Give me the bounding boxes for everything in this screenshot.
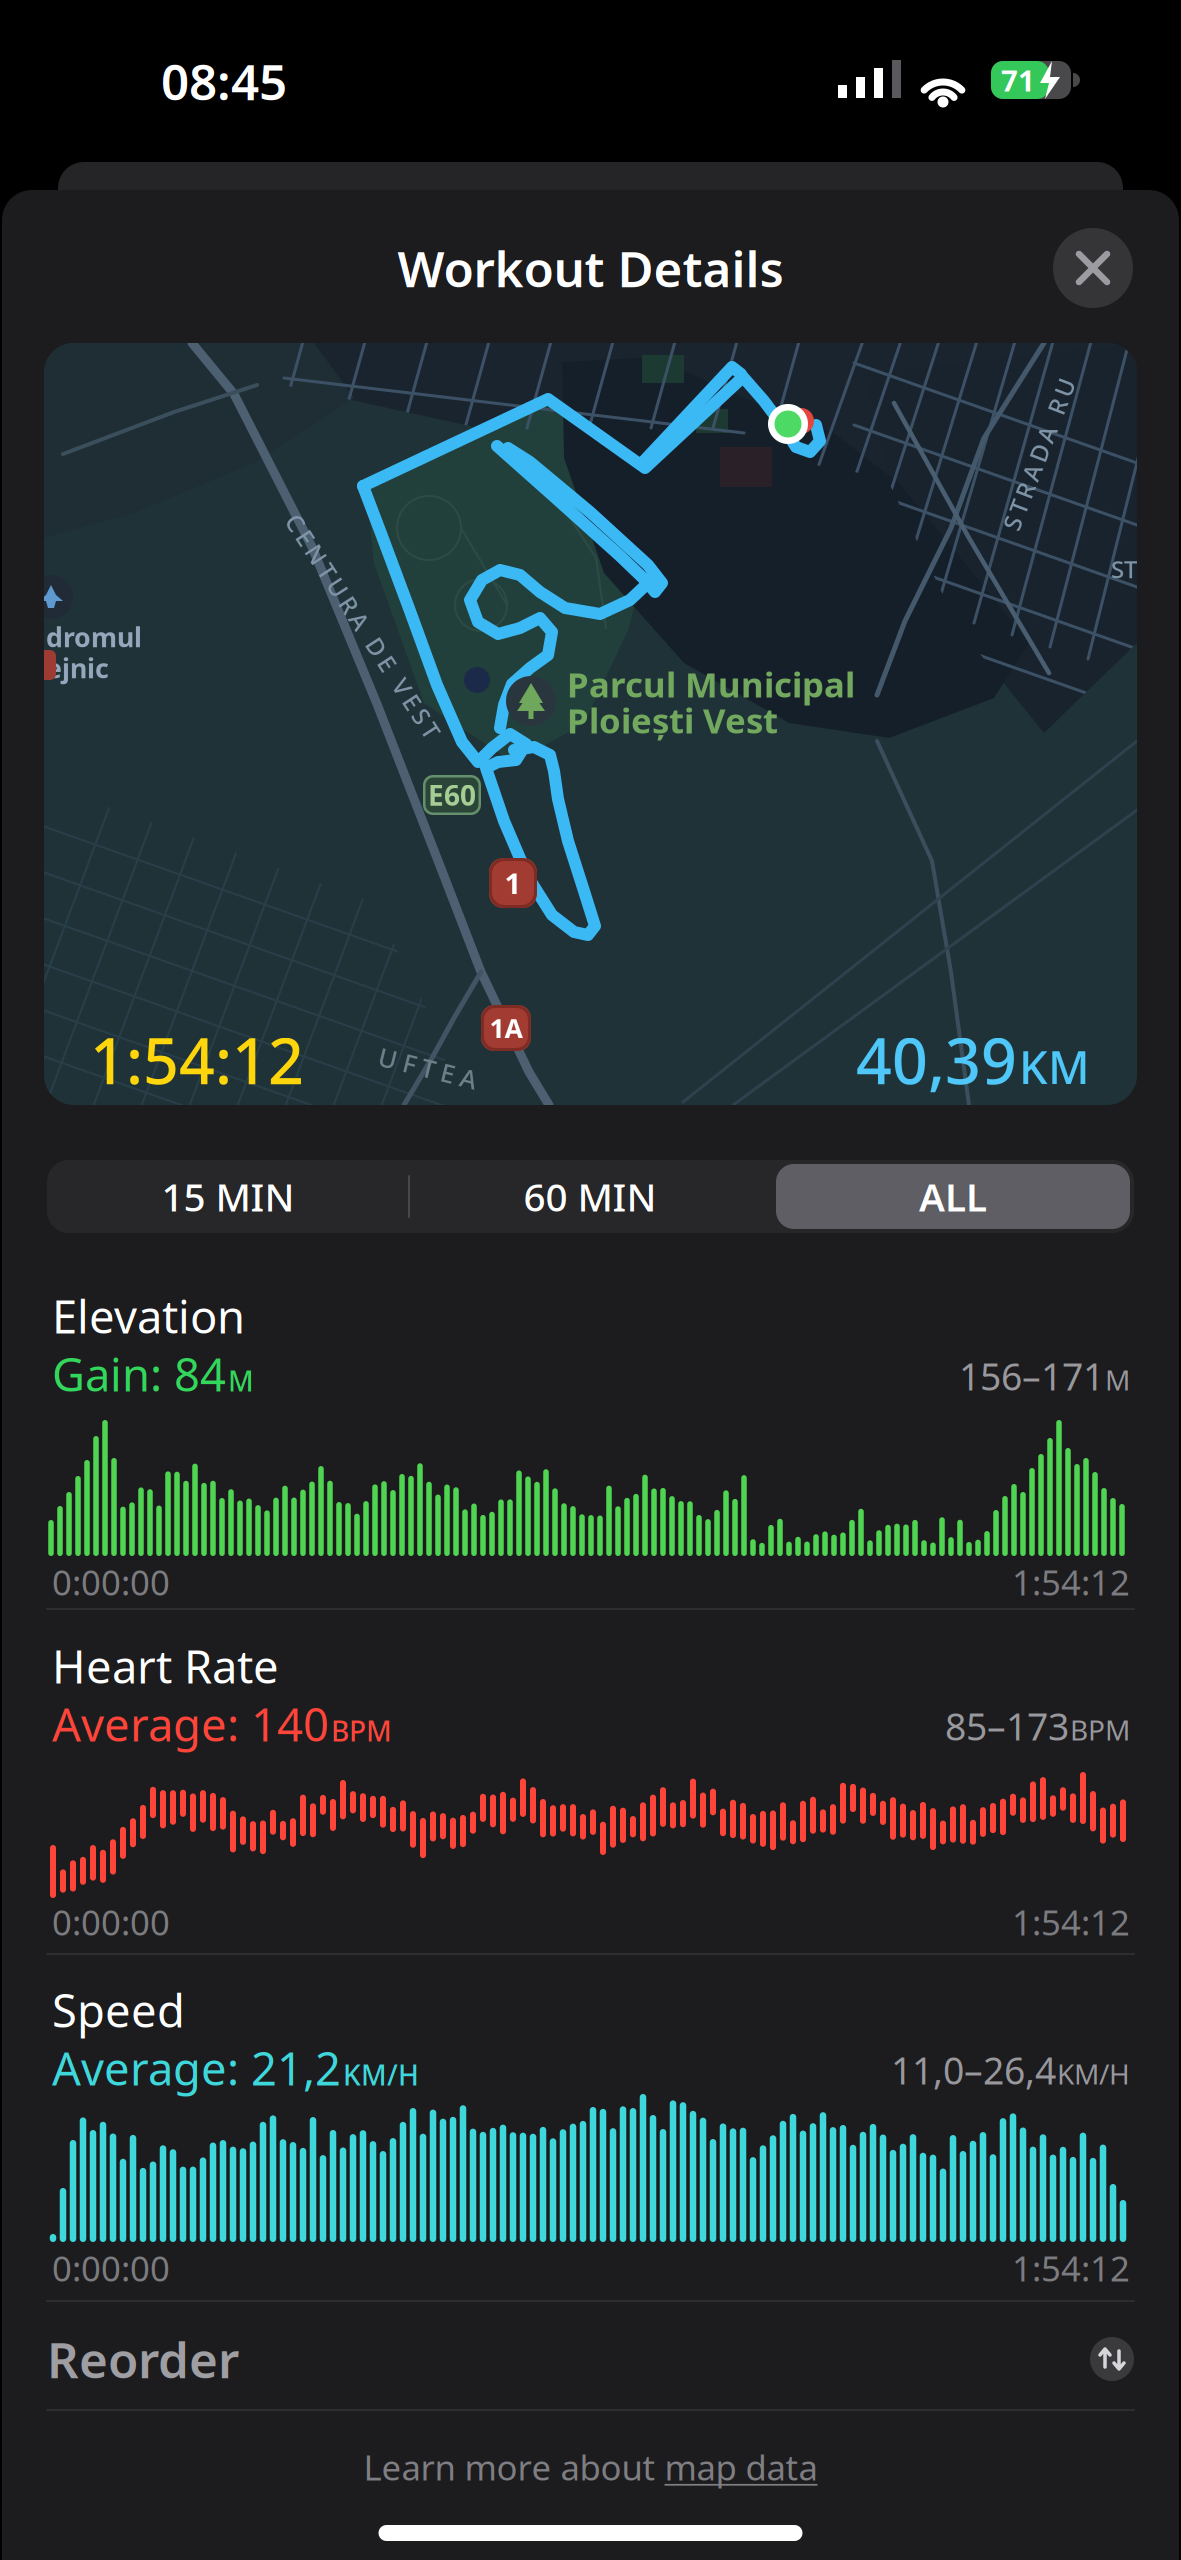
staticText: 40,39 <box>856 1018 1017 1102</box>
staticText: M <box>1105 1361 1130 1398</box>
staticText: BPM <box>331 1712 392 1749</box>
button[interactable]: Reorder <box>47 2314 1134 2404</box>
button[interactable]: 60 MIN <box>410 1160 770 1233</box>
button[interactable]: Close <box>1053 228 1133 308</box>
staticText: 85–173 <box>945 1701 1069 1751</box>
staticText: 1:54:12 <box>1012 1559 1130 1605</box>
staticText: ejnic <box>46 650 109 686</box>
staticText: Learn more about <box>363 2444 664 2490</box>
staticText: Reorder <box>47 2326 239 2392</box>
button[interactable]: 15 MIN <box>48 1160 408 1233</box>
staticText: ST <box>1111 553 1137 585</box>
staticText: 1 <box>504 863 521 902</box>
staticText: 1A <box>489 1010 522 1046</box>
staticText: 11,0–26,4 <box>891 2045 1056 2095</box>
staticText: KM/H <box>343 2056 419 2093</box>
staticText: 15 MIN <box>161 1171 294 1222</box>
staticText: CENTURA DE VEST <box>232 610 494 642</box>
staticText: M <box>228 1362 254 1399</box>
staticText: Ploiești Vest <box>567 697 778 743</box>
staticText: UFTEA <box>377 1051 478 1085</box>
button[interactable]: ALL <box>776 1164 1130 1229</box>
staticText: 0:00:00 <box>52 1559 170 1605</box>
staticText: Heart Rate <box>52 1636 279 1696</box>
button[interactable]: Learn more about <box>363 2444 817 2490</box>
staticText: Average: 21,2 <box>52 2038 341 2098</box>
staticText: Speed <box>52 1980 185 2040</box>
staticText: 1:54:12 <box>1012 2245 1130 2291</box>
staticText: 60 MIN <box>523 1171 656 1222</box>
staticText: 156–171 <box>959 1351 1104 1401</box>
staticText: KM <box>1019 1037 1090 1097</box>
staticText: 1:54:12 <box>1012 1899 1130 1945</box>
staticText: Gain: 84 <box>52 1344 226 1404</box>
staticText: BPM <box>1070 1711 1130 1748</box>
staticText: 71 <box>1001 60 1035 99</box>
staticText: 1:54:12 <box>90 1018 304 1102</box>
staticText: ALL <box>919 1171 987 1222</box>
staticText: KM/H <box>1057 2055 1130 2092</box>
staticText: Average: 140 <box>52 1694 329 1754</box>
staticText: Workout Details <box>397 235 783 301</box>
staticText: 0:00:00 <box>52 1899 170 1945</box>
staticText: map data <box>664 2444 817 2490</box>
staticText: Parcul Municipal <box>567 661 855 707</box>
staticText: Elevation <box>52 1286 245 1346</box>
staticText: 08:45 <box>161 48 287 114</box>
staticText: E60 <box>428 776 476 814</box>
staticText: 0:00:00 <box>52 2245 170 2291</box>
staticText: dromul <box>46 619 142 655</box>
staticText: STRADA RU <box>958 438 1119 470</box>
